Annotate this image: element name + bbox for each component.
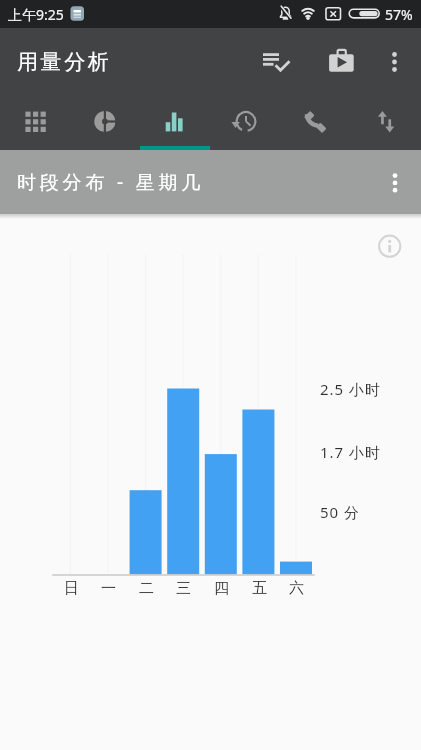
staticText: 日 [64, 579, 79, 597]
staticText: 50 分 [320, 502, 361, 522]
button[interactable] [140, 95, 210, 150]
staticText: 一 [101, 579, 116, 597]
button[interactable] [0, 95, 70, 150]
staticText: 时段分布 - 星期几 [17, 169, 204, 195]
button[interactable]: 时段分布 - 星期几 [0, 150, 421, 214]
staticText: 三 [176, 579, 191, 597]
button[interactable] [333, 28, 381, 95]
button[interactable] [350, 95, 420, 150]
staticText: 上午9:25 [8, 5, 64, 24]
staticText: 四 [214, 579, 229, 597]
button[interactable] [210, 95, 280, 150]
staticText: 2.5 小时 [320, 379, 382, 399]
button[interactable] [70, 95, 140, 150]
staticText: 六 [289, 579, 304, 597]
staticText: 五 [252, 579, 267, 597]
staticText: 1.7 小时 [320, 442, 382, 462]
button[interactable] [280, 95, 350, 150]
button[interactable] [285, 28, 333, 95]
staticText: 用量分析 [17, 49, 112, 75]
button[interactable] [374, 230, 406, 262]
staticText: 二 [139, 579, 154, 597]
staticText: 57% [385, 5, 413, 24]
button[interactable] [381, 28, 421, 95]
